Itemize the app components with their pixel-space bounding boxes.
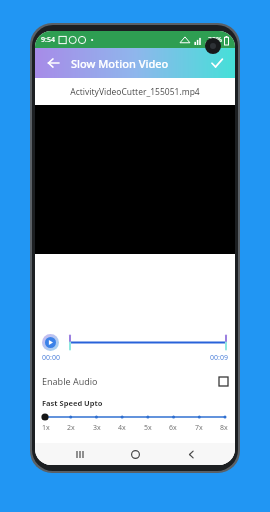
staticText: 00:00 [42,353,60,363]
staticText: 2x [67,423,75,433]
button[interactable]: Trim range [68,334,228,351]
staticText: 38% [208,35,222,45]
staticText: 9:54 [41,35,55,45]
button[interactable]: Back [180,443,202,465]
staticText: 5x [144,423,152,433]
staticText: Enable Audio [42,375,98,387]
button[interactable]: Home [124,443,146,465]
staticText: 6x [169,423,177,433]
button[interactable]: Back [43,53,63,73]
button[interactable]: Done [207,53,227,73]
staticText: 1x [42,423,50,433]
staticText: 7x [195,423,203,433]
button[interactable]: Enable Audio [35,373,235,389]
button[interactable]: Play [42,334,59,351]
staticText: ActivityVideoCutter_155051.mp4 [35,86,235,98]
staticText: Slow Motion Video [71,56,169,71]
button[interactable]: Speed slider [42,411,228,423]
staticText: Fast Speed Upto [42,398,103,408]
staticText: 00:09 [210,353,228,363]
button[interactable]: Recents [69,443,91,465]
staticText: 8x [220,423,228,433]
staticText: 4x [118,423,126,433]
staticText: 3x [93,423,101,433]
